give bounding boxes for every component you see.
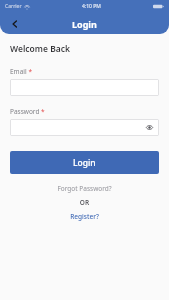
button[interactable]: Login	[10, 151, 159, 174]
staticText: Login	[73, 157, 96, 169]
button[interactable]: Show password	[144, 122, 155, 133]
staticText: Password *	[10, 107, 45, 116]
button[interactable]: Back	[6, 15, 24, 33]
staticText: Login	[72, 18, 97, 30]
staticText: Welcome Back	[10, 43, 71, 55]
staticText: Carrier	[5, 3, 22, 10]
staticText: Forgot Password?	[57, 184, 112, 193]
staticText: Register?	[70, 212, 99, 221]
button[interactable]: Show password	[10, 119, 159, 136]
staticText: OR	[10, 198, 159, 207]
button[interactable]	[10, 79, 159, 96]
staticText: 4:10 PM	[82, 3, 101, 10]
button[interactable]: Register?	[10, 212, 159, 221]
button[interactable]: Forgot Password?	[10, 184, 159, 193]
staticText: Email *	[10, 67, 32, 76]
